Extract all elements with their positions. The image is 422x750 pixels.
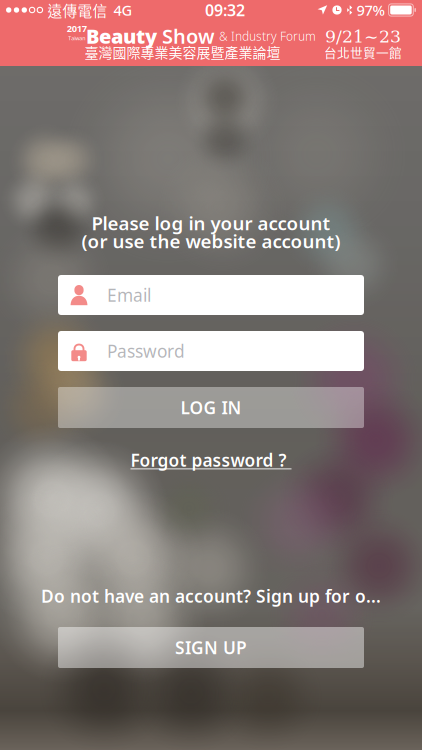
staticText: Show <box>157 23 215 49</box>
staticText: 臺灣國際專業美容展暨產業論壇 <box>84 42 280 62</box>
staticText: Please log in your account <box>91 211 330 235</box>
staticText: 4G <box>114 0 133 20</box>
staticText: 2017 <box>67 22 87 35</box>
staticText: Forgot password ? <box>130 448 291 471</box>
button[interactable]: Password <box>58 331 364 371</box>
staticText: LOG IN <box>180 396 241 419</box>
staticText: Do not have an account? Sign up for o... <box>41 584 381 607</box>
button[interactable]: LOG IN <box>58 387 364 428</box>
button[interactable]: SIGN UP <box>58 627 364 668</box>
button[interactable]: Forgot password ? <box>130 449 291 471</box>
staticText: Password <box>107 339 185 362</box>
staticText: 09:32 <box>205 0 245 21</box>
staticText: (or use the website account) <box>81 229 340 253</box>
staticText: & Industry Forum <box>216 28 316 44</box>
staticText: 97% <box>357 0 385 20</box>
staticText: 遠傳電信 <box>48 0 108 21</box>
staticText: Beauty <box>86 23 157 49</box>
staticText: Taiwan <box>68 35 85 42</box>
button[interactable]: Email <box>58 275 364 315</box>
staticText: 台北世貿一館 <box>324 43 402 61</box>
staticText: SIGN UP <box>175 636 247 659</box>
staticText: Email <box>107 283 151 306</box>
staticText: 9/21~23 <box>325 26 401 47</box>
